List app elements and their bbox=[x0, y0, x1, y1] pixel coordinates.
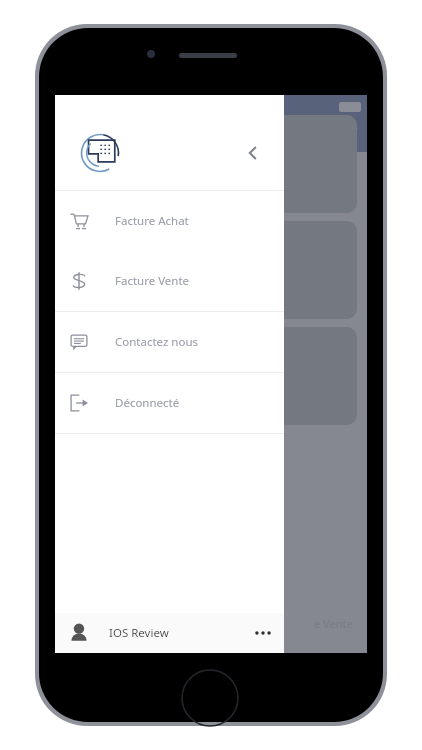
button[interactable]: IOS Review bbox=[55, 613, 284, 653]
button[interactable]: More options bbox=[248, 618, 278, 648]
button[interactable]: Collapse drawer bbox=[236, 136, 270, 170]
staticText: Brouillon bbox=[80, 133, 127, 148]
button[interactable]: Brouillon bbox=[65, 327, 357, 425]
staticText: IOS Review bbox=[109, 625, 169, 641]
staticText: Facture Vente bbox=[115, 273, 190, 289]
button[interactable]: Facture Vente bbox=[55, 251, 284, 311]
button[interactable]: Brouillon bbox=[65, 221, 357, 319]
button[interactable]: Contactez nous bbox=[55, 312, 284, 372]
button[interactable]: Close navigation drawer bbox=[55, 95, 367, 653]
button[interactable]: Refresh bbox=[337, 123, 359, 145]
button[interactable]: Déconnecté bbox=[55, 373, 284, 433]
staticText: Facture Achat bbox=[115, 213, 189, 229]
staticText: Contactez nous bbox=[115, 334, 199, 350]
staticText: e Vente bbox=[314, 616, 353, 631]
button[interactable]: Facture Achat bbox=[55, 191, 284, 251]
staticText: Déconnecté bbox=[115, 395, 180, 411]
button[interactable]: Brouillon bbox=[65, 115, 357, 213]
button[interactable]: App logo bbox=[78, 131, 122, 175]
staticText: Brouillon bbox=[80, 345, 127, 360]
